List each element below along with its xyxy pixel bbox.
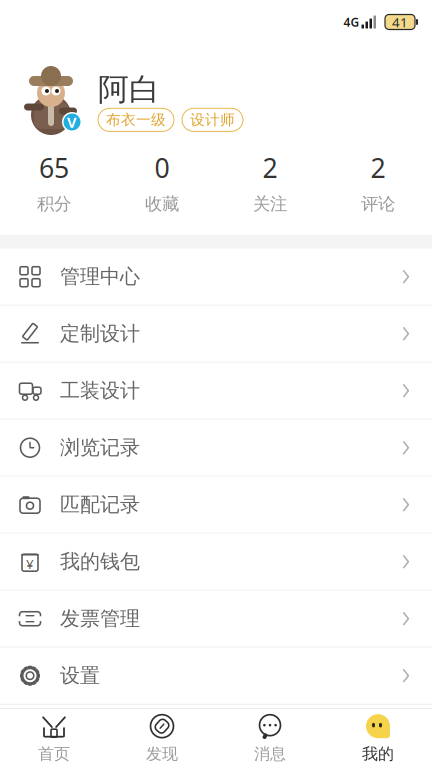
staticText: 41 [392,13,408,31]
staticText: 评论 [361,193,395,215]
button[interactable]: 工装设计 [0,363,432,420]
button[interactable]: ¥ [0,534,432,591]
staticText: 发现 [146,744,178,764]
staticText: 浏览记录 [60,435,140,460]
staticText: 设计师 [190,111,235,129]
staticText: ¥ [26,555,34,573]
staticText: 我的钱包 [60,549,140,574]
button[interactable]: 消息 [216,709,324,768]
staticText: V [67,112,77,132]
staticText: 4G [343,14,359,30]
button[interactable]: 2 [324,150,432,215]
button[interactable]: 管理中心 [0,249,432,306]
staticText: 2 [370,150,385,185]
staticText: 工装设计 [60,378,140,403]
staticText: 发票管理 [60,606,140,631]
button[interactable]: 2 [216,150,324,215]
staticText: 消息 [254,744,286,764]
button[interactable]: 发现 [108,709,216,768]
button[interactable]: 定制设计 [0,306,432,363]
staticText: 65 [39,150,69,185]
button[interactable]: 匹配记录 [0,477,432,534]
staticText: 我的 [362,744,394,764]
staticText: 阿白 [98,71,160,108]
button[interactable]: 发票管理 [0,591,432,648]
staticText: 2 [262,150,277,185]
button[interactable]: 0 [108,150,216,215]
staticText: 0 [154,150,169,185]
staticText: 管理中心 [60,264,140,289]
button[interactable]: 我的 [324,709,432,768]
button[interactable]: 设置 [0,648,432,705]
button[interactable]: 首页 [0,709,108,768]
staticText: 设置 [60,663,100,688]
staticText: 收藏 [145,193,179,215]
staticText: 定制设计 [60,321,140,346]
staticText: 布衣一级 [106,111,166,129]
staticText: 匹配记录 [60,492,140,517]
staticText: 积分 [37,193,71,215]
button[interactable]: 65 [0,150,108,215]
staticText: 关注 [253,193,287,215]
button[interactable]: 浏览记录 [0,420,432,477]
staticText: 首页 [38,744,70,764]
